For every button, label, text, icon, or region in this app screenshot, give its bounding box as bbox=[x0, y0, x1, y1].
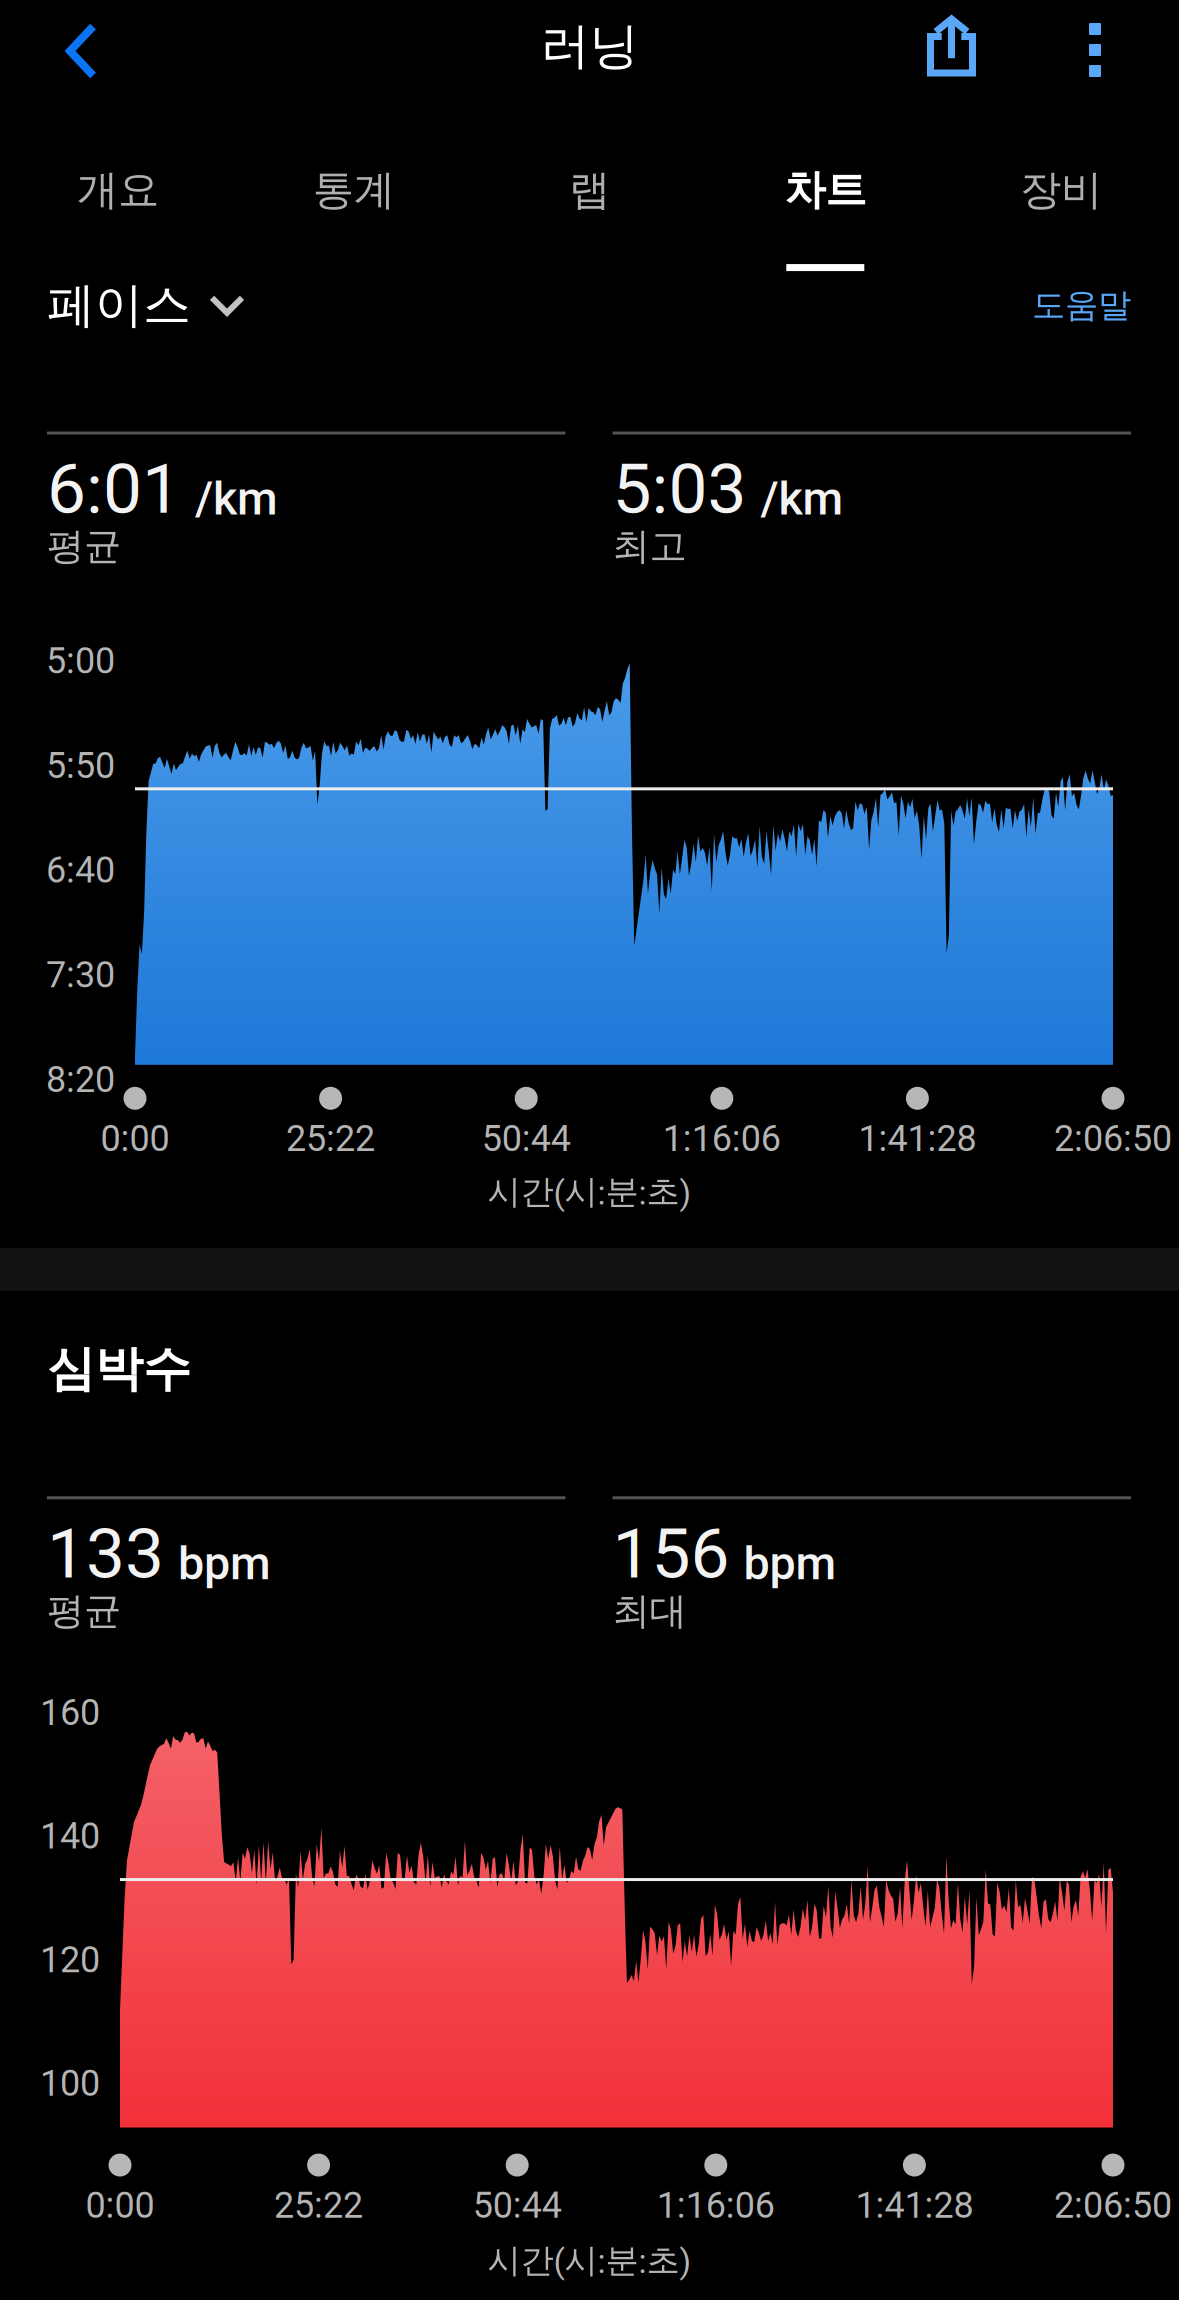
staticText: 차트 bbox=[784, 164, 866, 216]
staticText: 7:30 bbox=[46, 954, 115, 996]
staticText: 133 bbox=[47, 1513, 164, 1594]
staticText: 심박수 bbox=[47, 1339, 191, 1399]
staticText: 시간(시:분:초) bbox=[487, 1171, 691, 1213]
staticText: 140 bbox=[40, 1815, 100, 1857]
staticText: 최대 bbox=[612, 1587, 686, 1634]
staticText: 개요 bbox=[77, 164, 159, 216]
button[interactable]: Share bbox=[887, 0, 1059, 91]
button[interactable]: 통계 bbox=[236, 92, 472, 271]
staticText: bpm bbox=[178, 1536, 271, 1590]
staticText: 도움말 bbox=[1032, 284, 1131, 326]
staticText: 0:00 bbox=[85, 2184, 154, 2227]
button[interactable]: 장비 bbox=[943, 92, 1179, 271]
button[interactable]: 페이스 bbox=[0, 275, 261, 336]
button[interactable]: 개요 bbox=[0, 92, 236, 271]
staticText: 평균 bbox=[47, 523, 121, 570]
staticText: 1:16:06 bbox=[663, 1118, 781, 1160]
staticText: 50:44 bbox=[482, 1118, 571, 1160]
staticText: 평균 bbox=[47, 1587, 121, 1634]
staticText: 120 bbox=[40, 1939, 100, 1981]
staticText: 50:44 bbox=[473, 2184, 562, 2227]
button[interactable]: 차트 bbox=[707, 92, 943, 271]
staticText: 페이스 bbox=[47, 275, 191, 336]
staticText: 25:22 bbox=[286, 1118, 375, 1160]
staticText: 2:06:50 bbox=[1054, 2184, 1172, 2227]
staticText: 1:16:06 bbox=[657, 2184, 775, 2227]
button[interactable]: 도움말 bbox=[1016, 284, 1179, 326]
staticText: 5:50 bbox=[46, 744, 115, 787]
staticText: 통계 bbox=[313, 164, 395, 216]
staticText: 2:06:50 bbox=[1054, 1118, 1172, 1160]
staticText: 8:20 bbox=[46, 1059, 115, 1101]
staticText: 25:22 bbox=[274, 2184, 363, 2227]
button[interactable]: More options bbox=[1059, 0, 1179, 92]
staticText: 시간(시:분:초) bbox=[487, 2240, 691, 2282]
staticText: 1:41:28 bbox=[855, 2184, 973, 2227]
staticText: 랩 bbox=[569, 164, 610, 216]
button[interactable]: Back bbox=[0, 0, 141, 91]
staticText: 156 bbox=[612, 1513, 729, 1594]
staticText: 5:00 bbox=[46, 640, 115, 682]
staticText: 5:03 bbox=[612, 448, 746, 530]
staticText: 6:01 bbox=[47, 448, 181, 530]
staticText: /km bbox=[195, 471, 278, 526]
staticText: 6:40 bbox=[46, 849, 115, 891]
staticText: 러닝 bbox=[540, 15, 638, 77]
staticText: 장비 bbox=[1020, 164, 1102, 216]
staticText: 0:00 bbox=[100, 1118, 169, 1160]
button[interactable]: 랩 bbox=[472, 92, 707, 271]
staticText: 100 bbox=[40, 2062, 100, 2105]
staticText: 최고 bbox=[612, 523, 686, 570]
staticText: bpm bbox=[743, 1536, 836, 1590]
staticText: 160 bbox=[40, 1692, 100, 1734]
staticText: /km bbox=[760, 471, 843, 526]
staticText: 1:41:28 bbox=[858, 1118, 976, 1160]
